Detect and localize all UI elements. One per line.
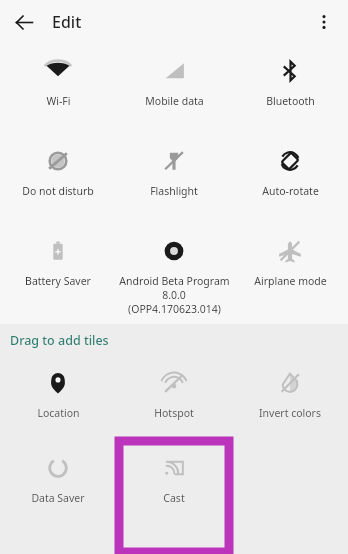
staticText: Android Beta Program [119,274,230,288]
staticText: Data Saver [31,491,85,505]
button[interactable]: Hotspot [116,356,232,426]
button[interactable]: Airplane mode [232,224,348,294]
staticText: Invert colors [259,406,321,420]
button[interactable]: Android Beta Program [116,224,232,322]
staticText: Wi-Fi [46,94,71,108]
button[interactable]: Bluetooth [232,44,348,114]
staticText: Location [37,406,80,420]
staticText: (OPP4.170623.014) [128,302,221,316]
button[interactable]: Do not disturb [0,134,116,204]
staticText: Cast [163,491,185,505]
button[interactable]: Battery Saver [0,224,116,294]
button[interactable]: Flashlight [116,134,232,204]
button[interactable]: Invert colors [232,356,348,426]
staticText: Edit [52,11,82,33]
staticText: 8.0.0 [162,288,186,302]
button[interactable]: Auto-rotate [232,134,348,204]
staticText: Flashlight [150,184,198,198]
staticText: Mobile data [145,94,204,108]
staticText: Battery Saver [25,274,91,288]
button[interactable]: Mobile data [116,44,232,114]
button[interactable]: Data Saver [0,441,116,511]
button[interactable]: Wi-Fi [0,44,116,114]
button[interactable]: Location [0,356,116,426]
staticText: Do not disturb [22,184,94,198]
button[interactable]: More options [308,6,340,38]
staticText: Auto-rotate [262,184,319,198]
staticText: Hotspot [154,406,194,420]
staticText: Bluetooth [266,94,315,108]
staticText: Airplane mode [254,274,327,288]
button[interactable]: Back [8,6,40,38]
button[interactable]: Cast [119,441,229,552]
staticText: Drag to add tiles [10,332,109,349]
